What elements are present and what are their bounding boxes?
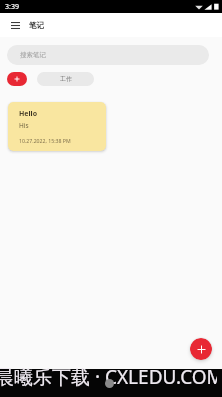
button[interactable]: Add note (190, 338, 212, 360)
staticText: Hello (19, 109, 38, 119)
button[interactable]: 工作 (37, 72, 94, 86)
staticText: His (19, 121, 29, 130)
staticText: 10.27.2022, 15:38 PM (19, 137, 71, 144)
button[interactable]: Menu (4, 14, 26, 36)
staticText: 笔记 (29, 21, 44, 30)
staticText: 工作 (60, 75, 72, 83)
button[interactable]: Add category (7, 72, 27, 86)
staticText: 晨曦乐下载 · CXLEDU.COM (0, 364, 217, 390)
button[interactable]: Hello (8, 102, 106, 151)
staticText: 3:39 (5, 2, 19, 12)
button[interactable]: 搜索笔记 (7, 45, 209, 65)
staticText: 搜索笔记 (20, 51, 46, 59)
